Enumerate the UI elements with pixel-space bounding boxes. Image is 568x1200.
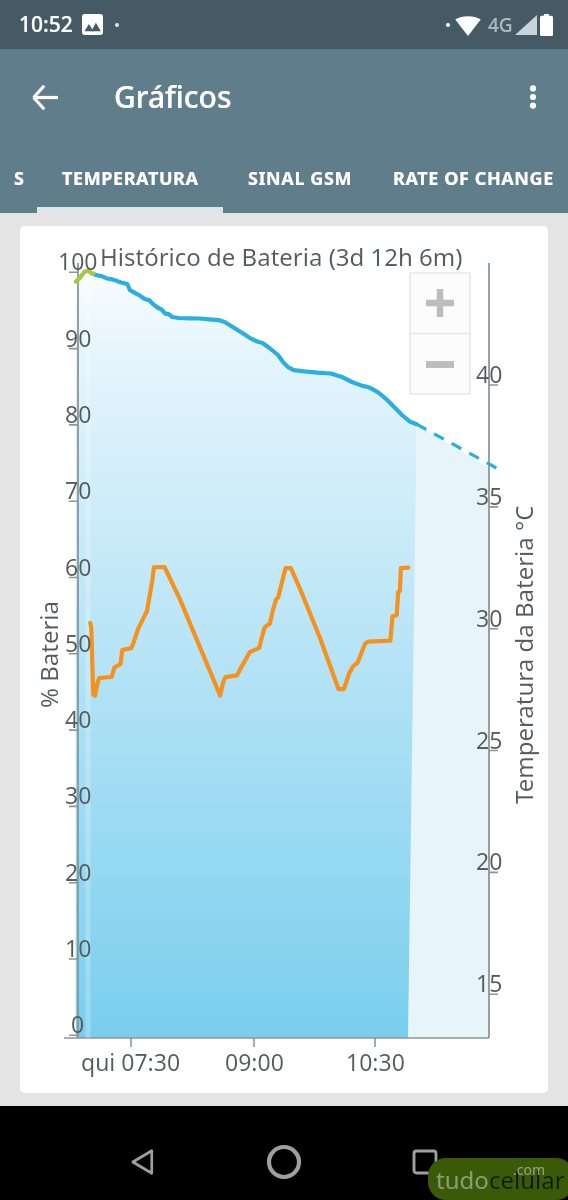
- staticText: % Bateria: [32, 600, 65, 708]
- staticText: qui 07:30: [81, 1046, 181, 1077]
- button[interactable]: Recent apps: [393, 1130, 457, 1194]
- button[interactable]: More options: [505, 69, 561, 125]
- button[interactable]: RATE OF CHANGE: [378, 144, 568, 213]
- staticText: 10:30: [346, 1046, 405, 1077]
- staticText: 10: [65, 932, 92, 963]
- staticText: 20: [476, 845, 503, 876]
- staticText: Temperatura da Bateria °C: [507, 505, 540, 804]
- staticText: 40: [476, 358, 503, 389]
- staticText: 60: [65, 551, 92, 582]
- button[interactable]: Back: [110, 1130, 174, 1194]
- staticText: RATE OF CHANGE: [393, 166, 554, 191]
- staticText: 0: [71, 1008, 85, 1039]
- staticText: 40: [65, 703, 92, 734]
- button[interactable]: TEMPERATURA: [37, 144, 223, 213]
- staticText: tudo: [436, 1163, 489, 1196]
- staticText: 30: [476, 602, 503, 633]
- staticText: 50: [65, 627, 92, 658]
- staticText: 70: [65, 474, 92, 505]
- staticText: celular: [489, 1163, 565, 1196]
- staticText: 15: [476, 967, 503, 998]
- staticText: 4G: [488, 12, 513, 38]
- staticText: .com: [513, 1160, 546, 1179]
- staticText: S: [14, 166, 24, 191]
- button[interactable]: Zoom out: [410, 334, 470, 394]
- button[interactable]: Back: [13, 65, 77, 129]
- staticText: 20: [65, 856, 92, 887]
- staticText: 10:52: [19, 10, 73, 39]
- button[interactable]: S: [0, 144, 37, 213]
- button[interactable]: Home: [252, 1130, 316, 1194]
- staticText: 09:00: [225, 1046, 284, 1077]
- button[interactable]: Zoom in: [410, 273, 470, 333]
- staticText: 35: [476, 480, 503, 511]
- staticText: 25: [476, 724, 503, 755]
- button[interactable]: SINAL GSM: [223, 144, 378, 213]
- staticText: 90: [65, 322, 92, 353]
- staticText: SINAL GSM: [248, 166, 353, 191]
- staticText: 30: [65, 779, 92, 810]
- staticText: TEMPERATURA: [62, 166, 199, 191]
- staticText: 80: [65, 398, 92, 429]
- staticText: 100: [58, 245, 98, 276]
- staticText: Gráficos: [114, 76, 232, 117]
- staticText: Histórico de Bateria (3d 12h 6m): [100, 240, 463, 273]
